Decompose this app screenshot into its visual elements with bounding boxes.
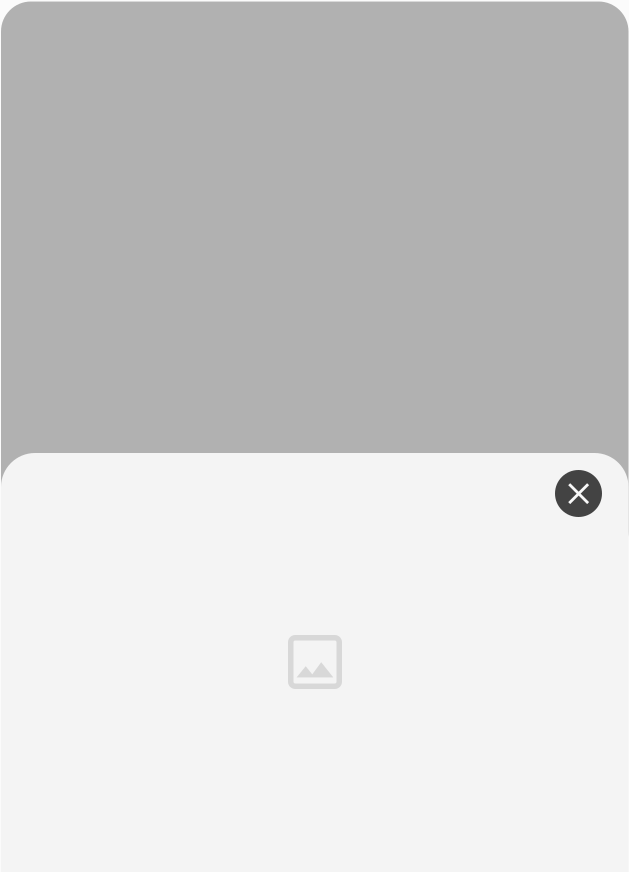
button[interactable]: Close [555, 470, 602, 517]
